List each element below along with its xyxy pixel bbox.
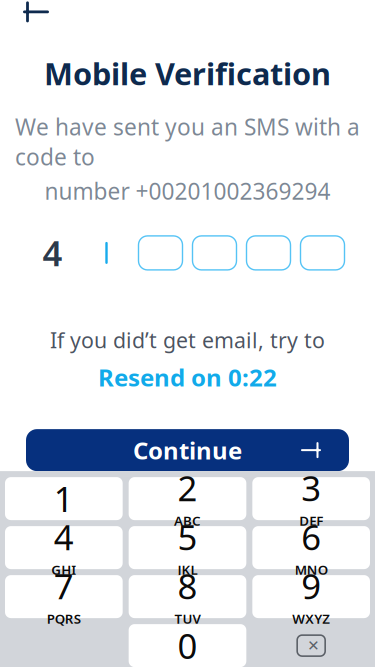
staticText: 6 <box>301 514 321 560</box>
staticText: We have sent you an SMS with a code to <box>15 112 360 172</box>
staticText: Mobile Verification <box>44 53 331 94</box>
button[interactable]: 1 <box>5 477 123 520</box>
button[interactable]: 9 <box>252 575 370 618</box>
staticText: MNO <box>295 561 328 578</box>
button[interactable]: 6 <box>252 526 370 569</box>
button[interactable]: Code digit <box>300 236 344 270</box>
button[interactable]: 4 <box>5 526 123 569</box>
button[interactable]: Continue <box>26 429 349 471</box>
button[interactable]: Code digit 2 <box>84 236 128 270</box>
staticText: 3 <box>301 465 321 511</box>
staticText: 0 <box>177 623 197 667</box>
button[interactable]: 3 <box>252 477 370 520</box>
staticText: ABC <box>174 512 201 529</box>
button[interactable]: Resend on 0:22 <box>98 361 277 393</box>
staticText: If you did’t get email, try to <box>50 326 325 354</box>
button[interactable]: Back <box>14 0 58 34</box>
staticText: 5 <box>177 514 197 560</box>
staticText: 2 <box>177 465 197 511</box>
staticText: ✕ <box>307 637 319 654</box>
button[interactable]: 0 <box>129 624 246 667</box>
staticText: WXYZ <box>292 610 330 627</box>
staticText: JKL <box>177 561 197 578</box>
staticText: DEF <box>299 512 323 529</box>
staticText: 1 <box>54 476 74 522</box>
staticText: 7 <box>54 563 74 609</box>
staticText: Resend on 0:22 <box>98 361 277 393</box>
button[interactable]: Code digit <box>138 236 182 270</box>
staticText: 4 <box>42 230 62 276</box>
staticText: Continue <box>133 434 242 466</box>
button[interactable]: 8 <box>129 575 246 618</box>
staticText: 9 <box>301 563 321 609</box>
staticText: TUV <box>174 610 200 627</box>
button[interactable]: 2 <box>129 477 246 520</box>
button[interactable]: 7 <box>5 575 123 618</box>
button[interactable]: 4 <box>30 236 74 270</box>
button[interactable]: Delete <box>252 624 370 667</box>
button[interactable]: Code digit <box>192 236 236 270</box>
staticText: number +00201002369294 <box>44 176 330 206</box>
button[interactable]: Code digit <box>246 236 290 270</box>
button[interactable]: 5 <box>129 526 246 569</box>
staticText: 8 <box>177 563 197 609</box>
staticText: PQRS <box>47 610 81 627</box>
staticText: GHI <box>51 561 76 578</box>
staticText: 4 <box>54 514 74 560</box>
